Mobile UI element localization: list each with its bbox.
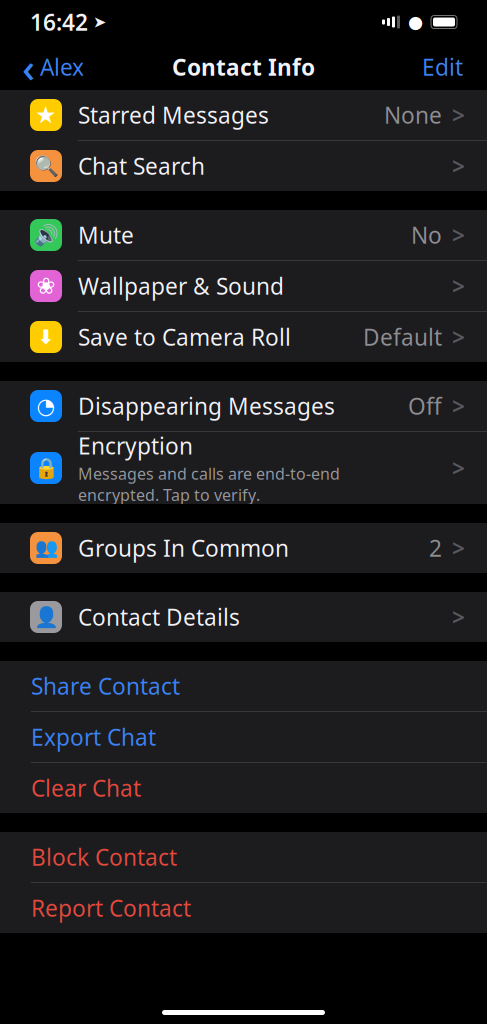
staticText: > (452, 322, 465, 352)
staticText: ◔ (36, 394, 55, 418)
staticText: ★ (35, 101, 57, 129)
staticText: Clear Chat (31, 773, 141, 803)
button[interactable]: 🔍 (0, 141, 487, 191)
button[interactable]: Export Chat (0, 712, 487, 762)
button[interactable]: ‹ (0, 34, 84, 99)
staticText: No (411, 220, 442, 250)
staticText: Chat Search (78, 151, 205, 181)
staticText: Groups In Common (78, 533, 289, 563)
button[interactable]: 🔒 (0, 432, 487, 504)
button[interactable]: ⬇ (0, 312, 487, 362)
staticText: Report Contact (31, 893, 191, 923)
staticText: Contact Details (78, 602, 240, 632)
staticText: Encryption (78, 431, 193, 461)
staticText: Contact Info (172, 52, 315, 82)
staticText: > (452, 151, 465, 181)
staticText: > (452, 453, 465, 483)
button[interactable]: Clear Chat (0, 763, 487, 813)
button[interactable]: Share Contact (0, 661, 487, 711)
staticText: Mute (78, 220, 134, 250)
staticText: Disappearing Messages (78, 391, 335, 421)
staticText: ‹ (22, 40, 35, 93)
button[interactable]: ★ (0, 90, 487, 140)
button[interactable]: Report Contact (0, 883, 487, 933)
staticText: ➤ (93, 13, 106, 31)
staticText: Share Contact (31, 671, 180, 701)
staticText: > (452, 220, 465, 250)
staticText: > (452, 100, 465, 130)
staticText: 16:42 (30, 7, 88, 37)
staticText: Messages and calls are end-to-end encryp… (78, 463, 340, 505)
staticText: Block Contact (31, 842, 177, 872)
staticText: 🔊 (33, 224, 58, 246)
staticText: Default (363, 322, 442, 352)
staticText: > (452, 271, 465, 301)
staticText: Export Chat (31, 722, 156, 752)
staticText: ❀ (36, 273, 55, 299)
staticText: Off (408, 391, 442, 421)
staticText: None (384, 100, 442, 130)
button[interactable]: 🔊 (0, 210, 487, 260)
staticText: 🔒 (33, 457, 58, 479)
button[interactable]: Block Contact (0, 832, 487, 882)
staticText: 🔍 (33, 155, 58, 177)
staticText: Alex (40, 52, 84, 82)
staticText: ● (408, 12, 423, 32)
staticText: Wallpaper & Sound (78, 271, 284, 301)
staticText: Starred Messages (78, 100, 269, 130)
staticText: > (452, 533, 465, 563)
button[interactable]: ◔ (0, 381, 487, 431)
staticText: Save to Camera Roll (78, 322, 291, 352)
staticText: 2 (429, 533, 442, 563)
staticText: Edit (422, 52, 463, 82)
button[interactable]: Edit (422, 46, 487, 88)
staticText: > (452, 602, 465, 632)
button[interactable]: 👤 (0, 592, 487, 642)
button[interactable]: 👥 (0, 523, 487, 573)
staticText: > (452, 391, 465, 421)
staticText: ⬇ (37, 326, 54, 348)
button[interactable]: ❀ (0, 261, 487, 311)
staticText: 👤 (33, 606, 58, 628)
staticText: 👥 (34, 537, 57, 559)
